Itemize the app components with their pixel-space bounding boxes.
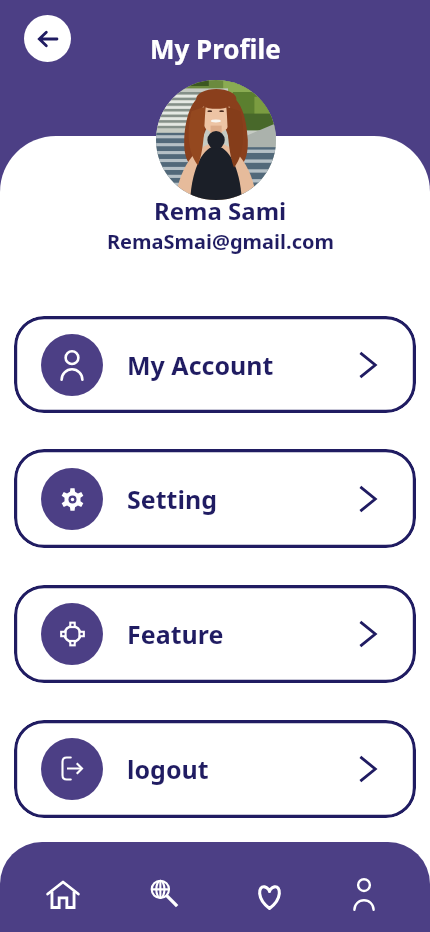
- button[interactable]: Search: [137, 867, 191, 921]
- button[interactable]: Back: [24, 15, 71, 62]
- button[interactable]: My Account: [14, 316, 416, 413]
- button[interactable]: Feature: [14, 585, 416, 683]
- button[interactable]: Setting: [14, 449, 416, 548]
- button[interactable]: Home: [36, 867, 90, 921]
- staticText: RemaSmai@gmail.com: [107, 228, 334, 255]
- staticText: logout: [127, 752, 209, 786]
- staticText: My Account: [127, 348, 274, 382]
- button[interactable]: Favorites: [242, 870, 296, 924]
- staticText: Rema Sami: [154, 194, 287, 227]
- staticText: Setting: [127, 482, 217, 516]
- button[interactable]: logout: [14, 720, 416, 818]
- staticText: Feature: [127, 617, 224, 651]
- button[interactable]: Profile: [337, 867, 391, 921]
- staticText: My Profile: [150, 31, 281, 66]
